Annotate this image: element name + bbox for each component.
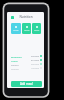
other: Menu bbox=[11, 16, 14, 19]
button[interactable]: Meals bbox=[22, 23, 31, 34]
button[interactable]: Menu bbox=[7, 12, 44, 22]
staticText: Add meal bbox=[20, 82, 33, 86]
staticText: Breakfast bbox=[11, 55, 22, 58]
button[interactable]: Snacks bbox=[11, 66, 42, 70]
staticText: Water bbox=[13, 29, 19, 32]
staticText: 120 kcal bbox=[31, 67, 39, 70]
staticText: Dinner bbox=[11, 63, 19, 66]
staticText: Steps bbox=[34, 29, 40, 32]
button[interactable]: Steps bbox=[32, 23, 41, 34]
button[interactable]: Add meal bbox=[11, 81, 42, 87]
staticText: Snacks bbox=[11, 67, 19, 70]
staticText: 610 kcal bbox=[31, 59, 39, 62]
staticText: Lunch bbox=[11, 59, 18, 62]
button[interactable]: Dinner bbox=[11, 62, 42, 66]
staticText: Nutrition bbox=[14, 15, 38, 19]
button[interactable]: Water bbox=[11, 23, 21, 34]
staticText: 380 kcal bbox=[31, 63, 39, 66]
staticText: 420 kcal bbox=[31, 55, 39, 58]
staticText: Meals bbox=[24, 29, 30, 32]
button[interactable]: Breakfast bbox=[11, 54, 42, 58]
button[interactable]: Lunch bbox=[11, 58, 42, 62]
